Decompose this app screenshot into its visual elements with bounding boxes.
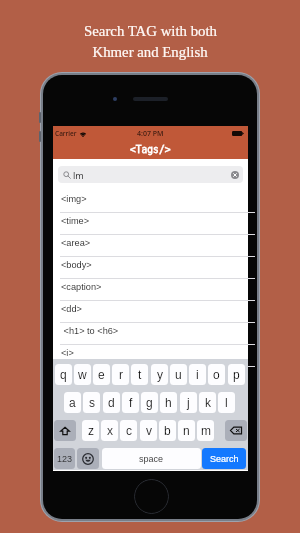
button[interactable]: n — [178, 420, 195, 441]
staticText: lm — [73, 169, 84, 181]
button[interactable]: 123 — [54, 448, 75, 469]
staticText: space — [139, 454, 164, 464]
staticText: <area> — [61, 238, 91, 248]
button[interactable]: <time> — [53, 213, 248, 235]
staticText: <caption> — [61, 282, 102, 292]
button[interactable]: Search — [202, 448, 246, 469]
staticText: l — [225, 396, 228, 409]
button[interactable]: a — [64, 392, 81, 413]
button[interactable]: Shift — [54, 420, 76, 441]
staticText: <i> — [61, 348, 74, 358]
staticText: k — [205, 396, 211, 409]
staticText: <h1> to <h6> — [61, 326, 119, 336]
button[interactable]: k — [199, 392, 216, 413]
staticText: z — [88, 424, 94, 437]
button[interactable]: p — [228, 364, 245, 385]
staticText: j — [187, 396, 190, 409]
button[interactable]: <caption> — [53, 279, 248, 301]
button[interactable]: <dd> — [53, 301, 248, 323]
button[interactable]: <h1> to <h6> — [53, 323, 248, 345]
button[interactable]: <area> — [53, 235, 248, 257]
staticText: <dd> — [61, 304, 82, 314]
button[interactable]: j — [180, 392, 197, 413]
button[interactable]: c — [120, 420, 137, 441]
button[interactable]: Emoji keyboard — [77, 448, 99, 469]
button[interactable]: <i> — [53, 345, 248, 367]
button[interactable]: <Tags/> — [53, 141, 248, 159]
staticText: w — [78, 368, 87, 381]
button[interactable]: r — [112, 364, 129, 385]
staticText: g — [146, 396, 153, 409]
button[interactable]: y — [151, 364, 168, 385]
button[interactable]: h — [160, 392, 177, 413]
staticText: 4:07 PM — [137, 129, 164, 139]
button[interactable]: <img> — [53, 191, 248, 213]
button[interactable]: i — [189, 364, 206, 385]
button[interactable]: u — [170, 364, 187, 385]
button[interactable]: d — [103, 392, 120, 413]
button[interactable]: z — [82, 420, 99, 441]
staticText: s — [89, 396, 95, 409]
staticText: u — [175, 368, 182, 381]
staticText: 123 — [57, 454, 73, 464]
staticText: o — [213, 368, 220, 381]
staticText: y — [157, 368, 163, 381]
staticText: h — [165, 396, 172, 409]
staticText: Search — [210, 454, 239, 464]
button[interactable]: b — [159, 420, 176, 441]
staticText: d — [108, 396, 115, 409]
staticText: q — [60, 368, 67, 381]
staticText: <Tags/> — [130, 144, 171, 155]
staticText: <img> — [61, 194, 87, 204]
button[interactable]: m — [197, 420, 214, 441]
button[interactable]: w — [74, 364, 91, 385]
button[interactable]: <body> — [53, 257, 248, 279]
button[interactable]: q — [55, 364, 72, 385]
staticText: e — [98, 368, 105, 381]
button[interactable]: f — [122, 392, 139, 413]
button[interactable]: v — [140, 420, 157, 441]
staticText: p — [233, 368, 240, 381]
staticText: <time> — [61, 216, 90, 226]
button[interactable]: space — [102, 448, 201, 469]
staticText: f — [129, 396, 133, 409]
staticText: i — [196, 368, 199, 381]
button[interactable]: s — [83, 392, 100, 413]
button[interactable]: e — [93, 364, 110, 385]
staticText: m — [201, 424, 211, 437]
staticText: a — [69, 396, 76, 409]
staticText: b — [164, 424, 171, 437]
staticText: v — [146, 424, 152, 437]
staticText: r — [119, 368, 123, 381]
button[interactable]: Clear text — [231, 171, 239, 179]
staticText: <body> — [61, 260, 92, 270]
staticText: Khmer and English — [92, 44, 208, 60]
button[interactable]: g — [141, 392, 158, 413]
staticText: t — [138, 368, 142, 381]
staticText: x — [107, 424, 113, 437]
button[interactable]: Backspace — [225, 420, 247, 441]
staticText: c — [126, 424, 132, 437]
button[interactable]: o — [208, 364, 225, 385]
button[interactable]: l — [218, 392, 235, 413]
other: Search — [63, 171, 71, 179]
staticText: Carrier — [55, 129, 77, 138]
button[interactable]: x — [101, 420, 118, 441]
button[interactable]: Search — [58, 166, 243, 183]
staticText: Search TAG with both — [84, 23, 217, 39]
button[interactable]: t — [131, 364, 148, 385]
staticText: n — [183, 424, 190, 437]
